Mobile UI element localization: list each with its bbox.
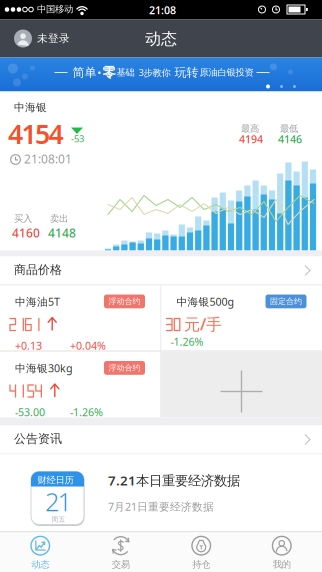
staticText: +0.04% xyxy=(70,338,106,353)
staticText: 4194 xyxy=(239,132,263,146)
button[interactable]: 公告资讯 xyxy=(0,425,322,453)
button[interactable]: 财经日历 xyxy=(0,454,322,531)
staticText: 21 xyxy=(45,484,71,518)
staticText: -53 xyxy=(71,132,84,145)
staticText: -53.00 xyxy=(15,405,45,419)
button[interactable]: 添加合约 xyxy=(161,351,322,417)
staticText: 中海银500g xyxy=(176,294,234,309)
button[interactable]: 我的 xyxy=(241,532,322,572)
staticText: 基础 xyxy=(116,67,137,78)
staticText: 7月21日重要经济数据 xyxy=(108,499,214,514)
staticText: 交易 xyxy=(112,559,130,570)
staticText: 中海油5T xyxy=(15,294,60,309)
staticText: 4146 xyxy=(278,132,302,146)
staticText: 最低 xyxy=(280,123,298,134)
staticText: 持仓 xyxy=(192,559,210,570)
staticText: 原油白银投资 xyxy=(199,67,253,78)
staticText: 4160 xyxy=(12,225,40,241)
staticText: 玩转 xyxy=(174,65,198,80)
staticText: 周五 xyxy=(51,515,65,524)
staticText: 我的 xyxy=(273,559,291,570)
staticText: 财经日历 xyxy=(37,474,73,486)
button[interactable]: 中海银 xyxy=(0,91,322,250)
button[interactable]: 未登录 xyxy=(0,19,56,37)
staticText: 中国移动 xyxy=(37,3,73,15)
button[interactable]: 交易 xyxy=(80,532,161,572)
staticText: 浮动合约 xyxy=(108,296,140,306)
button[interactable]: 中海银500g xyxy=(161,285,322,350)
staticText: 元/手 xyxy=(184,313,222,335)
staticText: 固定合约 xyxy=(270,296,302,306)
staticText: 买入 xyxy=(14,213,32,224)
staticText: 中海银 xyxy=(14,101,47,114)
staticText: +0.13 xyxy=(15,338,42,353)
staticText: 动态 xyxy=(145,29,177,49)
staticText: 简单 xyxy=(68,65,96,80)
button[interactable]: 动态 xyxy=(0,532,80,572)
staticText: 公告资讯 xyxy=(14,431,62,446)
staticText: 动态 xyxy=(31,559,49,570)
staticText: 7.21本日重要经济数据 xyxy=(108,471,240,489)
staticText: -1.26% xyxy=(170,334,203,349)
staticText: 未登录 xyxy=(37,32,70,45)
staticText: 最高 xyxy=(241,123,259,134)
staticText: • xyxy=(97,66,101,79)
button[interactable]: 中海油5T xyxy=(0,285,160,350)
staticText: 浮动合约 xyxy=(108,363,140,373)
button[interactable]: 中海银30kg xyxy=(0,352,160,417)
staticText: 4154 xyxy=(8,116,63,151)
staticText: -1.26% xyxy=(70,405,103,419)
staticText: 21:08 xyxy=(149,3,176,17)
staticText: 零 xyxy=(102,64,115,81)
staticText: 中海银30kg xyxy=(15,361,73,375)
button[interactable]: 持仓 xyxy=(161,532,241,572)
staticText: 21:08:01 xyxy=(24,151,72,167)
staticText: 3步教你 xyxy=(138,66,173,79)
staticText: 商品价格 xyxy=(14,262,62,277)
staticText: 卖出 xyxy=(50,213,68,224)
button[interactable]: 简单 xyxy=(0,57,322,91)
staticText: 4148 xyxy=(48,225,76,241)
button[interactable]: 商品价格 xyxy=(0,256,322,284)
